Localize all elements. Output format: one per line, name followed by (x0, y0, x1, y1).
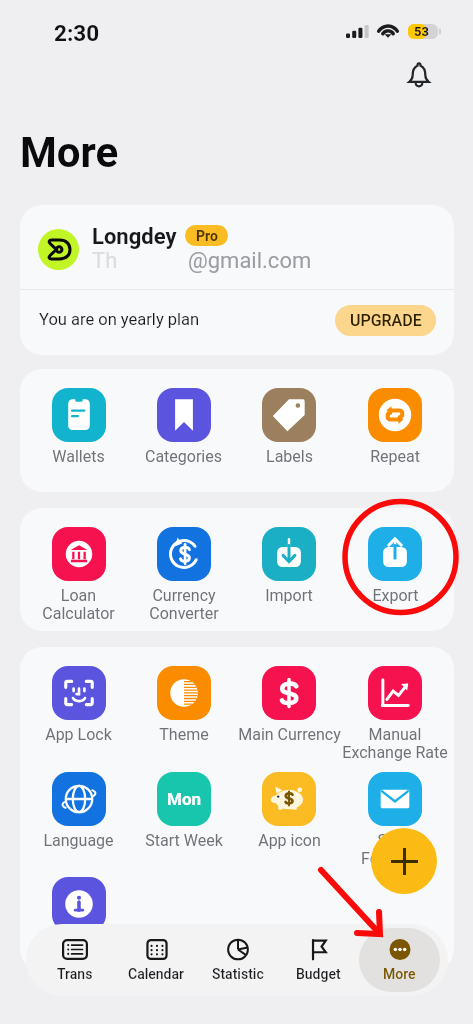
button[interactable]: Theme (131, 666, 236, 744)
staticText: Th (92, 248, 118, 274)
button[interactable]: You are on yearly plan (20, 290, 454, 355)
button[interactable]: Statistic (197, 928, 278, 992)
button[interactable]: Trans (34, 928, 116, 992)
staticText: Calendar (128, 966, 185, 982)
button[interactable]: Loan Calculator (26, 527, 131, 623)
staticText: App Lock (45, 725, 112, 744)
button[interactable]: Budget (278, 928, 359, 992)
staticText: Main Currency (238, 725, 341, 744)
button[interactable]: Export (342, 527, 448, 605)
staticText: UPGRADE (350, 311, 422, 330)
staticText: More (20, 128, 119, 177)
button[interactable]: Repeat (342, 388, 448, 466)
staticText: Budget (296, 966, 341, 982)
button[interactable]: Notifications (403, 58, 435, 90)
button[interactable]: Add transaction (371, 828, 437, 894)
staticText: Start Week (145, 831, 223, 850)
button[interactable]: App Lock (26, 666, 131, 744)
staticText: 2:30 (54, 20, 100, 46)
staticText: Loan Calculator (42, 586, 115, 623)
staticText: App icon (258, 831, 321, 850)
button[interactable]: Longdey (20, 205, 454, 289)
button[interactable]: Import (236, 527, 342, 605)
staticText: Manual Exchange Rate (342, 725, 448, 762)
button[interactable]: Categories (131, 388, 236, 466)
staticText: Currency Converter (149, 586, 219, 623)
button[interactable]: Currency Converter (131, 527, 236, 623)
staticText: Language (43, 831, 114, 850)
button[interactable]: UPGRADE (335, 305, 436, 336)
staticText: @gmail.com (188, 248, 312, 274)
staticText: You are on yearly plan (39, 310, 200, 329)
staticText: Pro (196, 228, 218, 244)
button[interactable]: More (359, 928, 440, 992)
button[interactable]: App icon (236, 772, 342, 850)
staticText: About (57, 936, 100, 955)
staticText: Labels (266, 447, 313, 466)
button[interactable]: Mon (131, 772, 236, 850)
button[interactable]: Language (26, 772, 131, 850)
button[interactable]: Labels (236, 388, 342, 466)
staticText: Longdey (92, 224, 177, 250)
button[interactable]: About (26, 877, 131, 955)
staticText: Send Feedback (361, 831, 430, 868)
button[interactable]: Manual Exchange Rate (342, 666, 448, 762)
button[interactable]: Calendar (116, 928, 197, 992)
staticText: Statistic (212, 966, 264, 982)
staticText: Mon (167, 789, 202, 809)
button[interactable]: Wallets (26, 388, 131, 466)
staticText: Categories (145, 447, 222, 466)
staticText: 53 (414, 24, 429, 39)
staticText: Export (372, 586, 419, 605)
staticText: Theme (159, 725, 209, 744)
staticText: Import (265, 586, 313, 605)
staticText: Wallets (52, 447, 105, 466)
staticText: More (383, 966, 416, 982)
button[interactable]: Send Feedback (342, 772, 448, 868)
button[interactable]: Main Currency (236, 666, 342, 744)
staticText: Repeat (370, 447, 420, 466)
staticText: Trans (57, 966, 93, 982)
